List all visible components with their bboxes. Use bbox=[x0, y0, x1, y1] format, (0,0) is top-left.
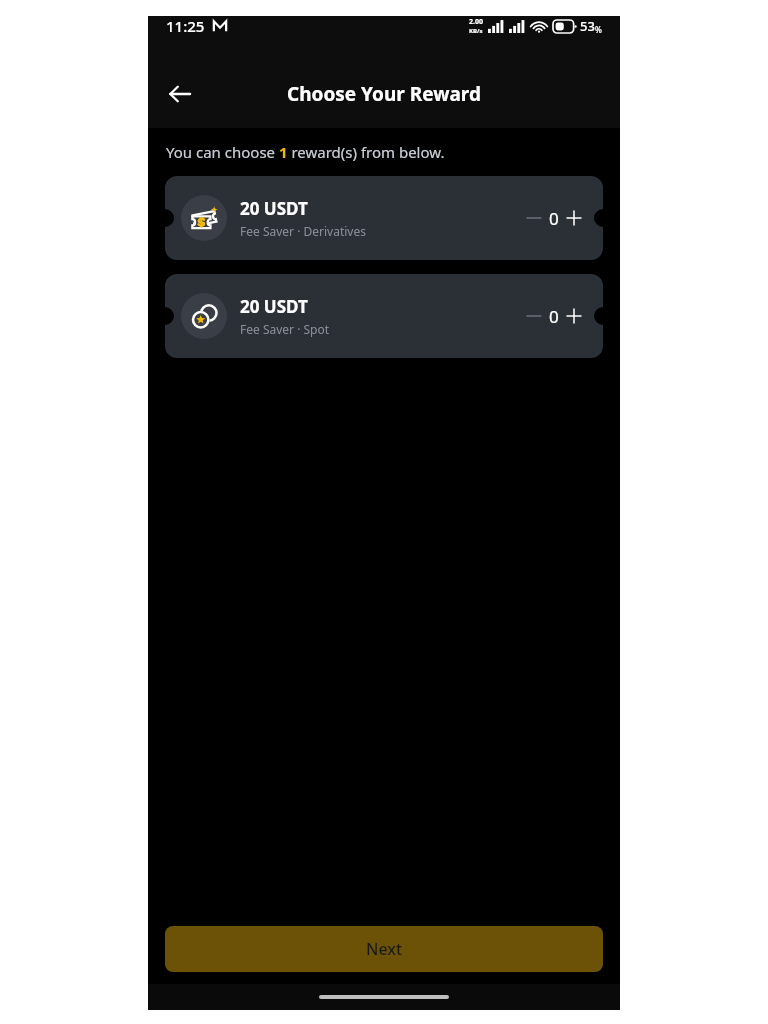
staticText: 20 USDT bbox=[240, 197, 308, 220]
staticText: 20 USDT bbox=[240, 295, 308, 318]
button[interactable]: 20 USDT bbox=[165, 274, 603, 358]
staticText: Fee Saver · Spot bbox=[240, 321, 330, 337]
button[interactable]: Back bbox=[156, 70, 204, 118]
button[interactable]: Increase bbox=[563, 203, 585, 233]
staticText: 53 bbox=[580, 17, 595, 35]
button[interactable]: Decrease bbox=[523, 301, 545, 331]
button[interactable]: Decrease bbox=[523, 203, 545, 233]
staticText: Next bbox=[366, 938, 403, 960]
staticText: 0 bbox=[549, 207, 559, 230]
button[interactable]: Next bbox=[165, 926, 603, 972]
staticText: Choose Your Reward bbox=[287, 81, 481, 107]
staticText: 0 bbox=[549, 305, 559, 328]
staticText: 2.00 bbox=[469, 17, 483, 27]
button[interactable]: Increase bbox=[563, 301, 585, 331]
staticText: % bbox=[595, 24, 602, 35]
staticText: You can choose 1 reward(s) from below. bbox=[166, 142, 445, 162]
staticText: Fee Saver · Derivatives bbox=[240, 223, 366, 239]
button[interactable]: 20 USDT bbox=[165, 176, 603, 260]
staticText: KB/s bbox=[469, 27, 483, 35]
staticText: 11:25 bbox=[166, 16, 205, 36]
